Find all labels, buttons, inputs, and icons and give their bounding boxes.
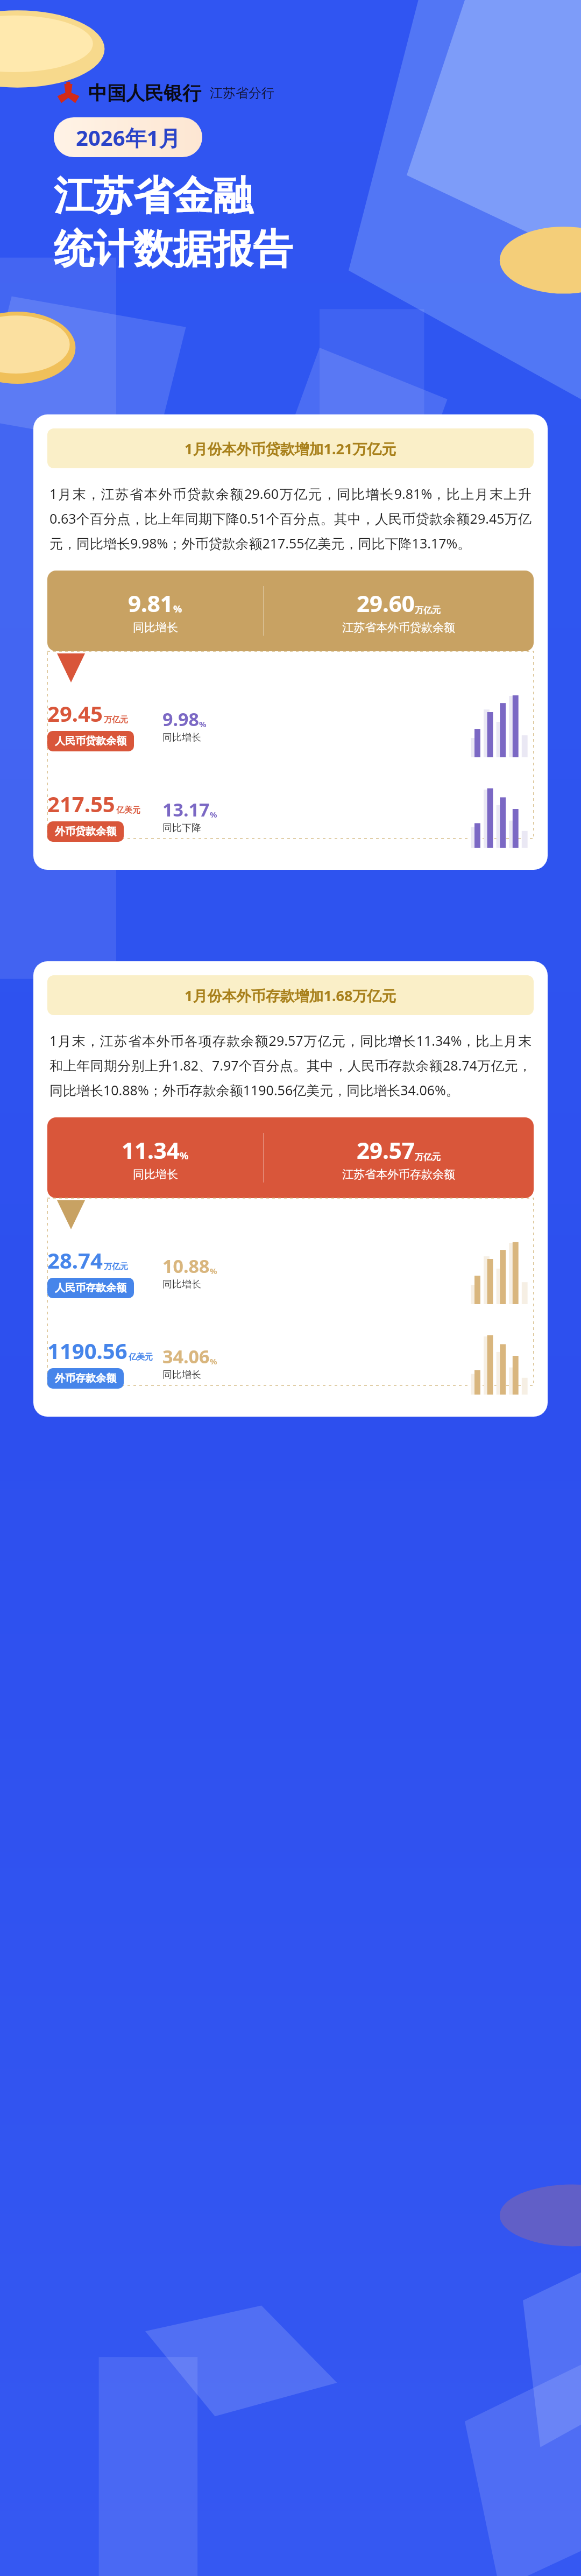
- staticText: 同比增长: [162, 1369, 201, 1381]
- staticText: 1月份本外币贷款增加1.21万亿元: [185, 439, 396, 459]
- button[interactable]: 9.81: [47, 571, 534, 651]
- other: 中国人民银行徽标: [56, 81, 81, 105]
- button[interactable]: 28.74: [47, 1231, 534, 1312]
- staticText: 江苏省金融: [54, 171, 253, 221]
- staticText: 亿美元: [116, 805, 140, 815]
- staticText: 江苏省分行: [210, 85, 274, 101]
- button[interactable]: 外币存款余额: [55, 1372, 116, 1385]
- staticText: 34.06: [162, 1344, 210, 1369]
- button[interactable]: 1月份本外币贷款增加1.21万亿元: [33, 414, 548, 870]
- staticText: 9.81: [128, 588, 173, 618]
- staticText: 28.74: [47, 1245, 103, 1275]
- staticText: 1月末，江苏省本外币各项存款余额29.57万亿元，同比增长11.34%，比上月末…: [49, 1031, 532, 1099]
- staticText: 人民币存款余额: [55, 1282, 126, 1294]
- staticText: 1月末，江苏省本外币贷款余额29.60万亿元，同比增长9.81%，比上月末上升0…: [49, 484, 532, 552]
- staticText: 1月份本外币存款增加1.68万亿元: [185, 986, 396, 1005]
- staticText: 外币贷款余额: [55, 825, 116, 838]
- staticText: 同比增长: [133, 1167, 178, 1181]
- staticText: %: [199, 719, 207, 729]
- button[interactable]: 中国人民银行徽标: [56, 81, 581, 105]
- staticText: %: [210, 809, 217, 820]
- staticText: 同比下降: [162, 822, 201, 834]
- button[interactable]: 人民币存款余额: [55, 1282, 126, 1294]
- staticText: 江苏省本外币存款余额: [342, 1167, 455, 1181]
- staticText: %: [210, 1265, 217, 1276]
- button[interactable]: 2026年1月: [54, 117, 202, 157]
- staticText: 2026年1月: [76, 123, 181, 152]
- staticText: 万亿元: [415, 1152, 441, 1163]
- staticText: 亿美元: [129, 1352, 153, 1362]
- staticText: 13.17: [162, 797, 210, 822]
- staticText: 江苏省本外币贷款余额: [342, 621, 455, 635]
- button[interactable]: 29.45: [47, 685, 534, 765]
- staticText: 同比增长: [162, 731, 201, 744]
- staticText: %: [210, 1356, 217, 1367]
- staticText: 外币存款余额: [55, 1372, 116, 1385]
- staticText: 万亿元: [104, 1262, 128, 1272]
- staticText: 1190.56: [47, 1336, 127, 1365]
- staticText: 万亿元: [415, 605, 441, 616]
- button[interactable]: 人民币贷款余额: [55, 735, 126, 748]
- staticText: 万亿元: [104, 715, 128, 725]
- staticText: 人民币贷款余额: [55, 735, 126, 748]
- staticText: 同比增长: [133, 621, 178, 635]
- staticText: 29.60: [357, 588, 415, 618]
- staticText: 中国人民银行: [88, 81, 201, 105]
- staticText: 10.88: [162, 1254, 210, 1278]
- button[interactable]: 217.55: [47, 775, 534, 856]
- button[interactable]: 外币贷款余额: [55, 825, 116, 838]
- staticText: %: [180, 1149, 189, 1163]
- staticText: 29.57: [357, 1135, 415, 1165]
- button[interactable]: 1月份本外币存款增加1.68万亿元: [33, 961, 548, 1417]
- staticText: %: [173, 602, 182, 616]
- staticText: 9.98: [162, 707, 199, 731]
- staticText: 11.34: [122, 1135, 180, 1165]
- button[interactable]: 1190.56: [47, 1322, 534, 1403]
- staticText: 217.55: [47, 789, 115, 818]
- staticText: 29.45: [47, 699, 103, 728]
- staticText: 统计数据报告: [54, 224, 293, 275]
- button[interactable]: 11.34: [47, 1117, 534, 1198]
- staticText: 同比增长: [162, 1278, 201, 1291]
